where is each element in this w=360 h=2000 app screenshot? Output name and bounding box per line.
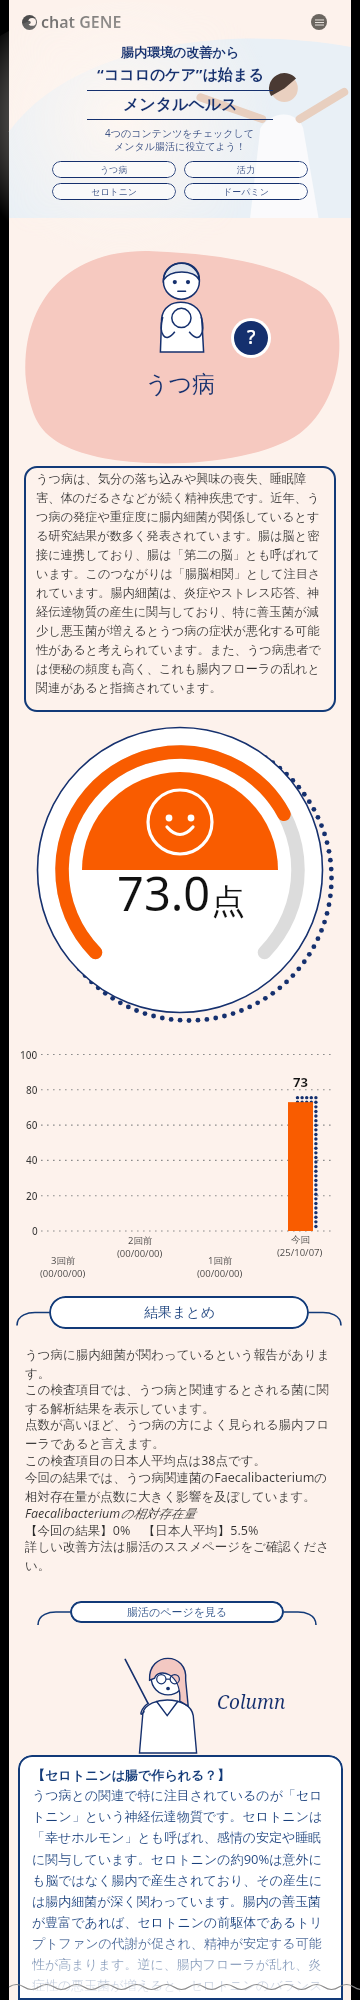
staticText: 60 (26, 1118, 38, 1132)
staticText: 点 (211, 880, 245, 923)
button[interactable]: Menu (311, 14, 327, 30)
staticText: Column (217, 1689, 286, 1715)
staticText: セロトニン (91, 186, 138, 197)
staticText: 【セロトニンは腸で作られる？】 (32, 1767, 231, 1783)
staticText: 点数が高いほど、うつ病の方によく見られる腸内フローラであると言えます。 (25, 1417, 337, 1452)
staticText: chat GENE (41, 11, 122, 33)
staticText: “ココロのケア”は始まる (97, 64, 264, 84)
button[interactable]: Help (231, 318, 271, 358)
staticText: (25/10/07) (277, 1246, 323, 1259)
button[interactable]: うつ病 (52, 161, 176, 178)
staticText: 73 (293, 1073, 308, 1091)
staticText: (00/00/00) (197, 1267, 243, 1280)
staticText: 73.0 (117, 861, 211, 925)
staticText: 腸活のページを見る (127, 1605, 228, 1619)
staticText: 今回 (291, 1234, 310, 1246)
staticText: 20 (26, 1189, 38, 1203)
staticText: うつ病 (145, 370, 216, 399)
button[interactable]: 結果まとめ (49, 1296, 309, 1329)
staticText: (00/00/00) (40, 1267, 86, 1280)
staticText: この検査項目の日本人平均点は38点です。 (25, 1452, 267, 1469)
staticText: メンタルヘルス (87, 95, 273, 115)
staticText: (00/00/00) (117, 1247, 163, 1260)
button[interactable]: ドーパミン (184, 183, 308, 200)
staticText: ? (247, 324, 256, 350)
staticText: 80 (26, 1083, 38, 1097)
staticText: メンタル腸活に役立てよう！ (114, 140, 246, 153)
staticText: 今回の結果では、うつ病関連菌のFaecalibacteriumの相対存在量が点数… (25, 1469, 337, 1505)
staticText: 2回前 (128, 1234, 153, 1247)
button[interactable]: 腸活のページを見る (70, 1601, 284, 1623)
staticText: 4つのコンテンツをチェックして (105, 126, 255, 140)
staticText: 活力 (237, 164, 255, 175)
staticText: 結果まとめ (144, 1304, 215, 1322)
staticText: Faecalibacteriumの相対存在量 (25, 1505, 196, 1522)
staticText: うつ病に腸内細菌が関わっているという報告があります。 (25, 1347, 337, 1382)
staticText: うつ病 (100, 164, 128, 175)
staticText: 【今回の結果】0% 【日本人平均】5.5% (25, 1522, 259, 1539)
staticText: 3回前 (51, 1254, 76, 1267)
staticText: 0 (32, 1224, 38, 1238)
staticText: うつ病との関連で特に注目されているのが「セロトニン」という神経伝達物質です。セロ… (32, 1787, 329, 2000)
staticText: 100 (20, 1048, 38, 1062)
staticText: 40 (26, 1153, 38, 1167)
button[interactable]: セロトニン (52, 183, 176, 200)
staticText: 詳しい改善方法は腸活のススメページをご確認ください。 (25, 1539, 337, 1574)
staticText: ドーパミン (223, 186, 269, 197)
staticText: この検査項目では、うつ病と関連するとされる菌に関する解析結果を表示しています。 (25, 1382, 337, 1417)
staticText: うつ病は、気分の落ち込みや興味の喪失、睡眠障害、体のだるさなどが続く精神疾患です… (36, 471, 324, 696)
staticText: 腸内環境の改善から (121, 44, 239, 60)
button[interactable]: 活力 (184, 161, 308, 178)
staticText: 1回前 (208, 1254, 233, 1267)
